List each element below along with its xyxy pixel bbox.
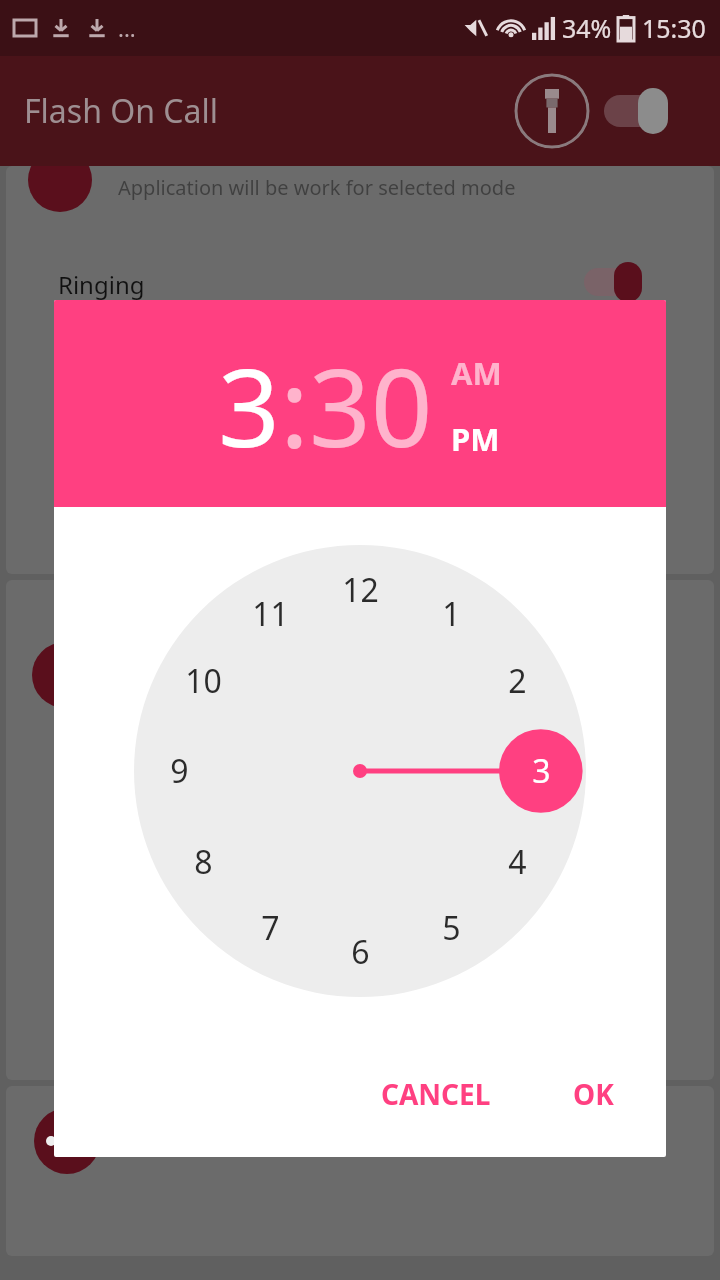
- staticText: 15:30: [642, 11, 706, 45]
- staticText: 34%: [562, 11, 612, 45]
- button[interactable]: 12: [333, 563, 387, 617]
- staticText: 3: [532, 749, 551, 793]
- button[interactable]: 3: [514, 744, 568, 798]
- staticText: 11: [252, 592, 289, 636]
- staticText: 12: [342, 568, 379, 612]
- staticText: 1: [442, 592, 461, 636]
- staticText: More: [122, 1121, 200, 1162]
- staticText: 6: [351, 930, 370, 974]
- staticText: 8: [194, 840, 213, 884]
- button[interactable]: 8: [176, 835, 230, 889]
- button[interactable]: 11: [243, 587, 297, 641]
- button[interactable]: 4: [490, 835, 544, 889]
- button[interactable]: 3: [218, 332, 280, 479]
- staticText: :: [280, 332, 309, 479]
- staticText: 2: [508, 659, 527, 703]
- button[interactable]: OK: [559, 1067, 628, 1121]
- staticText: Application will be work for selected mo…: [118, 174, 516, 201]
- button[interactable]: 2: [490, 654, 544, 708]
- button[interactable]: Flashlight: [514, 73, 590, 149]
- staticText: 9: [170, 749, 189, 793]
- staticText: 5: [442, 906, 461, 950]
- button[interactable]: 5: [424, 901, 478, 955]
- button[interactable]: 9: [152, 744, 206, 798]
- button[interactable]: PM: [451, 418, 500, 460]
- staticText: 10: [185, 659, 222, 703]
- button[interactable]: Toggle: [604, 86, 694, 136]
- staticText: 4: [508, 840, 527, 884]
- staticText: ...: [118, 13, 136, 43]
- staticText: 7: [261, 906, 280, 950]
- staticText: CANCEL: [381, 1075, 491, 1113]
- staticText: Flash On Call: [24, 89, 219, 133]
- button[interactable]: 10: [176, 654, 230, 708]
- staticText: Ringing: [58, 268, 145, 301]
- button[interactable]: 30: [309, 332, 433, 479]
- button[interactable]: CANCEL: [367, 1067, 505, 1121]
- button[interactable]: More: [6, 1086, 714, 1196]
- button[interactable]: 6: [333, 925, 387, 979]
- button[interactable]: AM: [451, 352, 502, 394]
- button[interactable]: 1: [424, 587, 478, 641]
- staticText: OK: [573, 1075, 614, 1113]
- button[interactable]: 7: [243, 901, 297, 955]
